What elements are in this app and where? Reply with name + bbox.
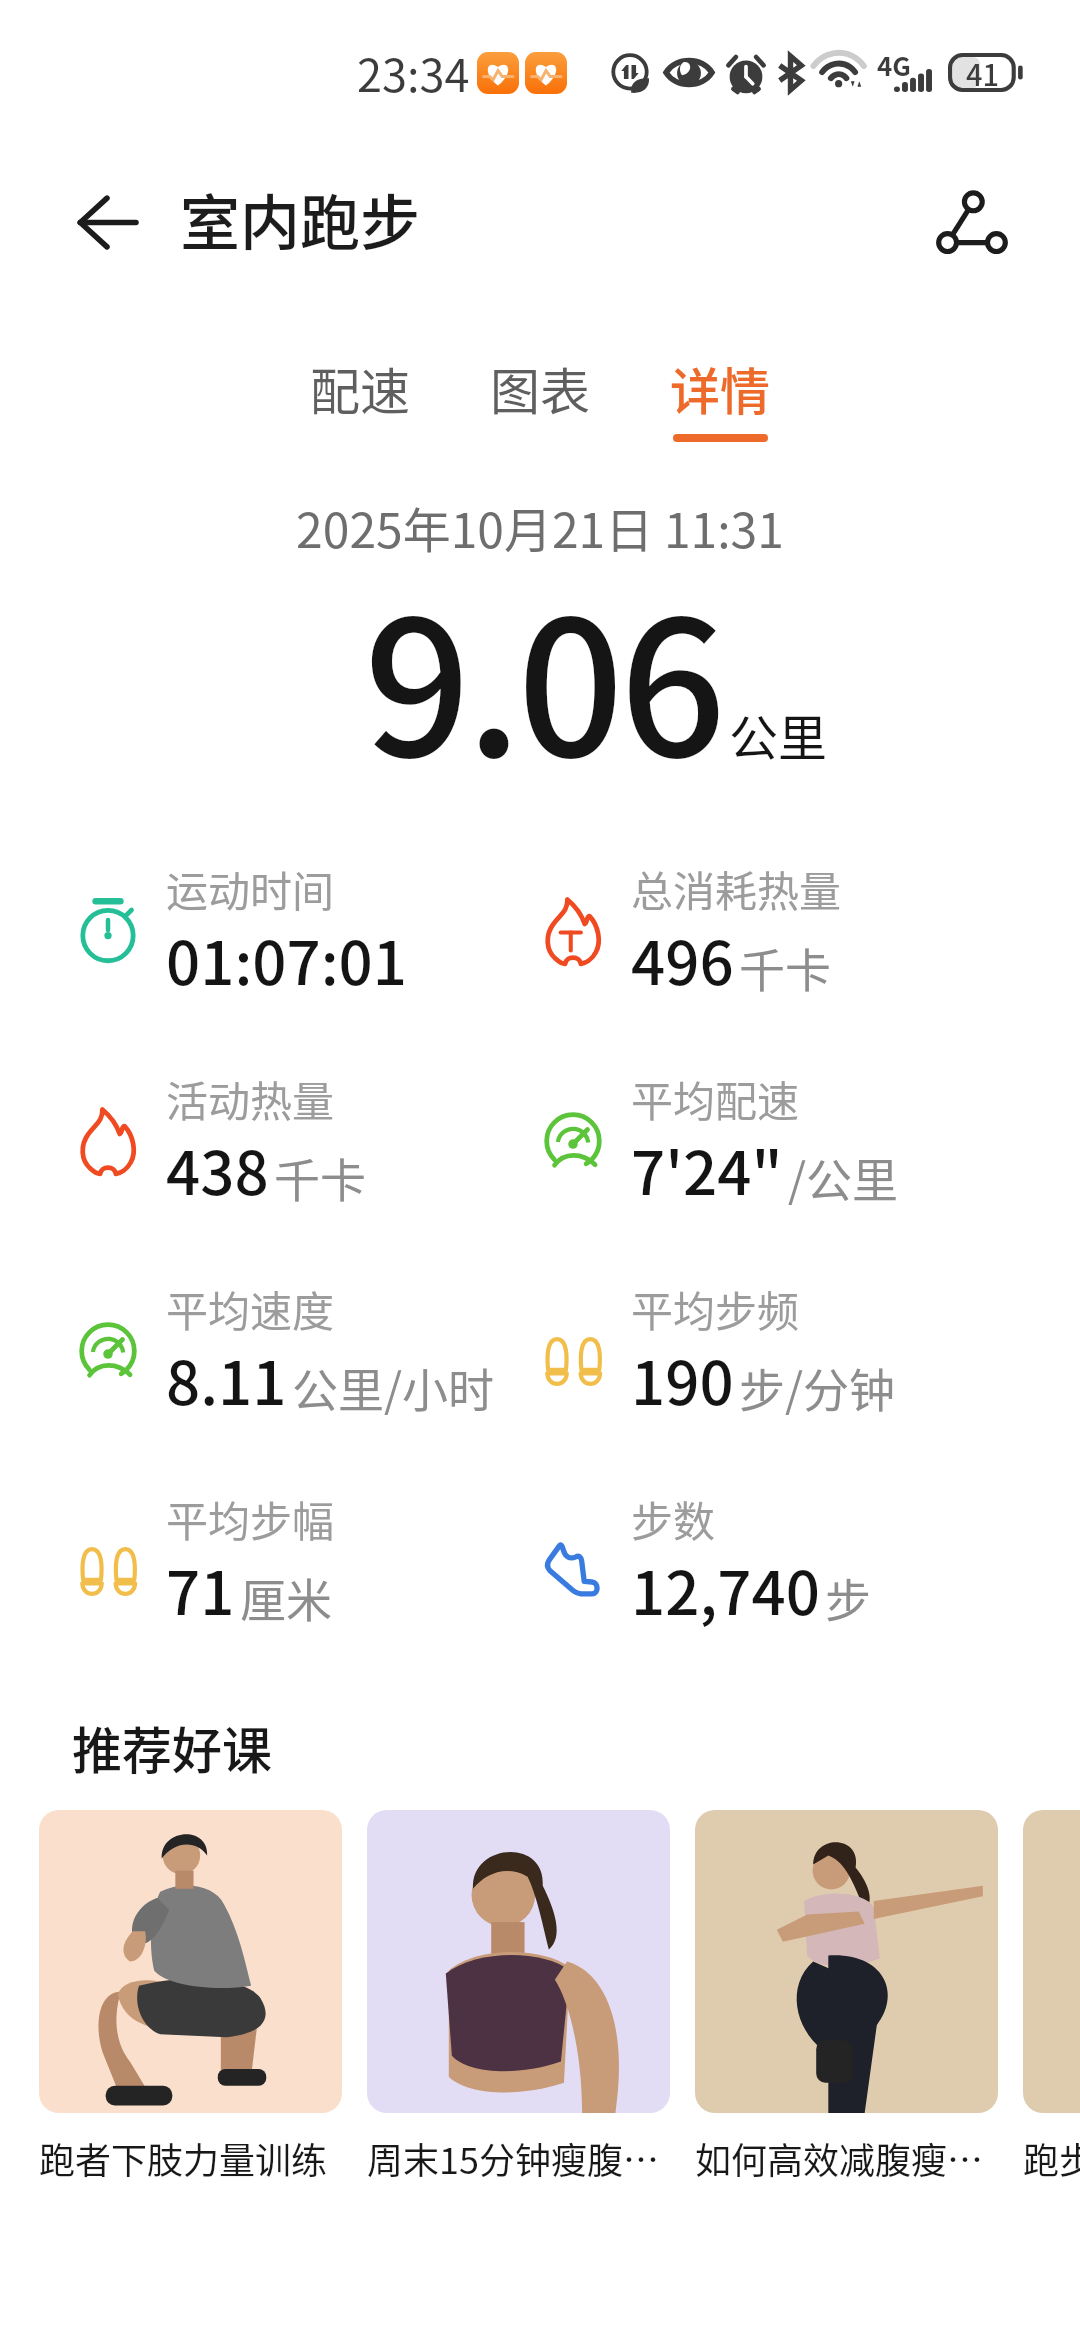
button[interactable]: 平均速度 [80, 1284, 530, 1424]
staticText: /公里 [788, 1144, 899, 1211]
button[interactable]: 平均配速 [545, 1074, 995, 1214]
staticText: 4G [877, 46, 911, 84]
staticText: 190 [631, 1335, 734, 1422]
staticText: 496 [631, 915, 734, 1002]
staticText: 运动时间 [166, 858, 335, 919]
staticText: 跑者下肢力量训练 [39, 2132, 328, 2184]
staticText: 9.06 [364, 539, 722, 810]
staticText: 步 [825, 1564, 871, 1631]
staticText: 如何高效减腹瘦… [695, 2132, 984, 2184]
button[interactable]: 如何高效减腹瘦… [695, 1810, 998, 2184]
staticText: 平均配速 [631, 1068, 800, 1129]
staticText: 跑步 [1023, 2132, 1080, 2184]
staticText: 71 [166, 1545, 235, 1632]
staticText: 步/分钟 [739, 1354, 896, 1421]
button[interactable]: 配速 [290, 352, 430, 456]
button[interactable]: 运动时间 [80, 864, 530, 1004]
staticText: 室内跑步 [180, 175, 420, 262]
button[interactable]: Share [912, 162, 1032, 282]
staticText: 活动热量 [166, 1068, 335, 1129]
staticText: 12,740 [631, 1545, 820, 1632]
staticText: 公里 [729, 699, 828, 770]
staticText: 公里/小时 [292, 1354, 495, 1421]
button[interactable]: 详情 [650, 352, 790, 456]
button[interactable]: 跑步 [1023, 1810, 1080, 2184]
staticText: 图表 [490, 352, 590, 424]
staticText: 千卡 [274, 1144, 366, 1211]
staticText: 438 [166, 1125, 269, 1212]
staticText: 8.11 [166, 1335, 287, 1422]
staticText: 01:07:01 [166, 915, 407, 1002]
staticText: 厘米 [240, 1564, 332, 1631]
staticText: 总消耗热量 [631, 858, 842, 919]
button[interactable]: 周末15分钟瘦腹… [367, 1810, 670, 2184]
staticText: 千卡 [739, 934, 831, 1001]
staticText: 23:34 [357, 40, 470, 105]
staticText: 平均步频 [631, 1278, 800, 1339]
staticText: 41 [966, 52, 1000, 91]
staticText: 平均速度 [166, 1278, 335, 1339]
button[interactable]: 跑者下肢力量训练 [39, 1810, 342, 2184]
button[interactable]: 步数 [545, 1494, 995, 1634]
staticText: 配速 [310, 352, 410, 424]
button[interactable]: 平均步幅 [80, 1494, 530, 1634]
button[interactable]: Back [47, 162, 167, 282]
button[interactable]: 活动热量 [80, 1074, 530, 1214]
staticText: 详情 [670, 352, 770, 424]
staticText: 步数 [631, 1488, 716, 1549]
staticText: 平均步幅 [166, 1488, 335, 1549]
staticText: 2025年10月21日 11:31 [0, 492, 1080, 562]
staticText: 推荐好课 [72, 1711, 272, 1783]
staticText: 7'24" [631, 1125, 783, 1212]
button[interactable]: 总消耗热量 [545, 864, 995, 1004]
button[interactable]: 图表 [470, 352, 610, 456]
staticText: 周末15分钟瘦腹… [367, 2132, 659, 2184]
button[interactable]: 平均步频 [545, 1284, 995, 1424]
